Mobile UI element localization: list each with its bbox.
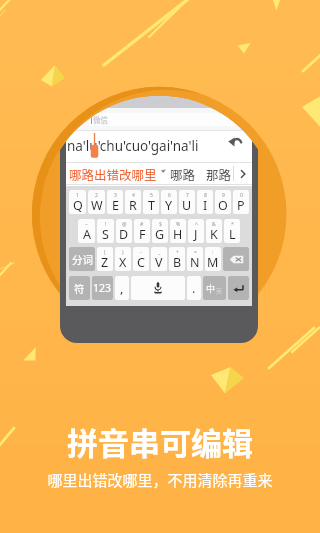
- button[interactable]: ~: [78, 219, 95, 243]
- staticText: X: [119, 254, 127, 271]
- staticText: ): [122, 249, 124, 256]
- staticText: I: [203, 197, 208, 214]
- button[interactable]: %: [170, 219, 186, 243]
- staticText: J: [194, 226, 198, 243]
- button[interactable]: #: [134, 219, 150, 243]
- button[interactable]: 9: [215, 190, 231, 214]
- staticText: C: [137, 254, 145, 271]
- staticText: 微信: [93, 114, 108, 125]
- button[interactable]: _: [151, 247, 167, 271]
- button[interactable]: 123: [92, 276, 113, 300]
- staticText: 中: [206, 282, 216, 295]
- staticText: %: [176, 221, 181, 228]
- button[interactable]: (: [97, 247, 113, 271]
- button[interactable]: Back: [222, 131, 248, 153]
- staticText: M: [207, 254, 219, 271]
- staticText: E: [112, 197, 119, 214]
- staticText: ^: [195, 221, 198, 228]
- staticText: V: [155, 254, 163, 271]
- button[interactable]: 6: [161, 190, 177, 214]
- staticText: 123: [93, 281, 112, 295]
- other: Delete: [229, 252, 244, 267]
- button[interactable]: 中: [203, 276, 226, 300]
- staticText: #: [140, 221, 144, 228]
- other: Voice input: [150, 280, 166, 296]
- staticText: 5: [150, 192, 153, 199]
- staticText: @: [122, 221, 127, 228]
- button[interactable]: 分词: [69, 247, 95, 271]
- button[interactable]: 符: [69, 276, 90, 300]
- staticText: =: [194, 249, 197, 256]
- staticText: &: [212, 221, 216, 228]
- staticText: *: [231, 221, 234, 228]
- staticText: $: [159, 221, 162, 228]
- staticText: A: [83, 226, 91, 243]
- staticText: L: [229, 226, 236, 243]
- button[interactable]: $: [152, 219, 168, 243]
- staticText: T: [148, 197, 155, 214]
- staticText: +: [176, 249, 179, 256]
- button[interactable]: 那路: [205, 165, 233, 183]
- staticText: P: [237, 197, 245, 214]
- staticText: F: [139, 226, 146, 243]
- staticText: 那路: [206, 165, 232, 183]
- button[interactable]: &: [206, 219, 222, 243]
- staticText: 分词: [72, 252, 93, 267]
- button[interactable]: Enter: [228, 276, 249, 300]
- button[interactable]: 哪路出错改哪里: [68, 165, 158, 183]
- button[interactable]: 8: [197, 190, 213, 214]
- other: Send: [76, 115, 85, 124]
- staticText: O: [218, 197, 228, 214]
- staticText: D: [119, 226, 129, 243]
- staticText: (: [104, 249, 106, 256]
- button[interactable]: -: [133, 247, 149, 271]
- button[interactable]: 5: [143, 190, 159, 214]
- button[interactable]: Delete: [223, 247, 249, 271]
- staticText: W: [91, 197, 103, 214]
- staticText: B: [173, 254, 182, 271]
- button[interactable]: ^: [188, 219, 204, 243]
- staticText: Q: [73, 197, 83, 214]
- button[interactable]: @: [116, 219, 132, 243]
- staticText: Y: [165, 197, 173, 214]
- staticText: S: [102, 226, 109, 243]
- button[interactable]: Voice input: [131, 276, 185, 300]
- staticText: 2: [95, 192, 98, 199]
- staticText: H: [173, 226, 183, 243]
- staticText: 哪路出错改哪里: [69, 165, 157, 183]
- staticText: 哪里出错改哪里，不用清除再重来: [47, 469, 273, 491]
- button[interactable]: ,: [115, 276, 129, 300]
- button[interactable]: 0: [233, 190, 249, 214]
- button[interactable]: ): [115, 247, 131, 271]
- staticText: 英: [216, 286, 223, 295]
- staticText: N: [190, 254, 200, 271]
- other: Enter: [231, 281, 246, 296]
- button[interactable]: =: [187, 247, 203, 271]
- button[interactable]: 1: [69, 190, 86, 214]
- staticText: ~: [85, 221, 88, 228]
- staticText: 0: [240, 192, 243, 199]
- button[interactable]: :: [205, 247, 221, 271]
- button[interactable]: !: [97, 219, 114, 243]
- staticText: !: [105, 221, 107, 228]
- button[interactable]: More candidates: [234, 162, 251, 185]
- button[interactable]: 4: [125, 190, 141, 214]
- button[interactable]: 2: [88, 190, 105, 214]
- button[interactable]: .: [187, 276, 201, 300]
- staticText: 6: [168, 192, 171, 199]
- button[interactable]: *: [224, 219, 240, 243]
- staticText: na'lu'chu'cuo'gai'na'li: [67, 137, 199, 155]
- button[interactable]: +: [169, 247, 185, 271]
- staticText: K: [210, 226, 218, 243]
- button[interactable]: 3: [107, 190, 123, 214]
- button[interactable]: 7: [179, 190, 195, 214]
- button[interactable]: 哪路: [169, 165, 197, 183]
- staticText: .: [192, 280, 196, 297]
- staticText: :: [212, 249, 214, 256]
- staticText: 9: [222, 192, 225, 199]
- staticText: G: [155, 226, 165, 243]
- staticText: 1: [76, 192, 79, 199]
- staticText: 3: [114, 192, 117, 199]
- staticText: 8: [204, 192, 207, 199]
- staticText: 4: [132, 192, 135, 199]
